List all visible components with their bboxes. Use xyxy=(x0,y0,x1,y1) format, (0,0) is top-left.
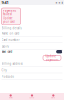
staticText: ▪ ▪ ▮ xyxy=(55,1,62,4)
staticText: Home xyxy=(9,97,13,99)
button[interactable]: More xyxy=(43,93,64,100)
staticText: City xyxy=(1,68,6,72)
staticText: Card number xyxy=(1,38,19,42)
staticText: Name on card xyxy=(1,32,19,35)
button[interactable]: Update payment xyxy=(43,56,61,60)
staticText: Billing details xyxy=(1,26,21,30)
staticText: Payment failed xyxy=(3,9,16,16)
staticText: Cards xyxy=(29,97,34,99)
button[interactable]: Save card xyxy=(0,49,64,54)
button[interactable]: Cards xyxy=(21,93,43,100)
staticText: Expiry xyxy=(1,45,8,48)
staticText: Update payment xyxy=(45,54,58,61)
staticText: Update your card xyxy=(3,16,15,24)
staticText: More xyxy=(51,97,55,99)
staticText: 9:41 xyxy=(1,0,8,5)
staticText: Save card xyxy=(1,50,12,53)
staticText: Billing address xyxy=(1,62,22,65)
button[interactable]: Home xyxy=(0,93,21,100)
staticText: Postcode xyxy=(1,75,14,78)
